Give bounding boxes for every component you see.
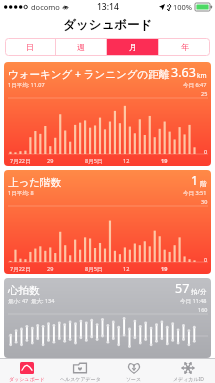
staticText: docomo bbox=[31, 2, 60, 12]
staticText: 12 bbox=[123, 265, 130, 272]
staticText: 19 bbox=[161, 157, 168, 164]
staticText: 月 bbox=[129, 42, 137, 52]
staticText: 最小: 47 最大: 134 bbox=[8, 297, 55, 305]
staticText: 8月5日 bbox=[85, 157, 103, 165]
staticText: 心拍数 bbox=[8, 284, 40, 297]
staticText: 3.63 bbox=[171, 64, 196, 81]
staticText: ソース bbox=[126, 376, 142, 382]
staticText: 1日平均: 11.07 bbox=[8, 81, 45, 89]
button[interactable]: メディカルID bbox=[161, 359, 215, 383]
staticText: 29 bbox=[47, 265, 54, 272]
button[interactable]: ウォーキング + ランニングの距離 bbox=[4, 62, 211, 166]
button[interactable]: ヘルスケアデータ bbox=[53, 359, 107, 383]
staticText: 0 bbox=[204, 148, 208, 155]
button[interactable]: 年 bbox=[159, 38, 210, 56]
staticText: 12 bbox=[123, 157, 130, 164]
staticText: 19 bbox=[161, 265, 168, 272]
staticText: 100% bbox=[173, 2, 193, 12]
staticText: 上った階数 bbox=[8, 176, 61, 189]
staticText: 今日 3:51 bbox=[183, 189, 207, 197]
staticText: 30 bbox=[201, 198, 208, 205]
staticText: 25 bbox=[201, 90, 208, 97]
staticText: 階 bbox=[200, 180, 207, 188]
button[interactable]: ダッシュボード bbox=[0, 359, 53, 383]
staticText: 13:14 bbox=[97, 1, 119, 13]
staticText: 今日 6:47 bbox=[183, 81, 207, 89]
staticText: 7月22日 bbox=[10, 265, 31, 273]
staticText: 拍/分 bbox=[191, 287, 207, 296]
staticText: ヘルスケアデータ bbox=[60, 376, 101, 382]
staticText: km bbox=[197, 71, 207, 80]
button[interactable]: 月 bbox=[107, 38, 158, 56]
staticText: 0 bbox=[204, 256, 208, 263]
staticText: 今日 11:48 bbox=[180, 297, 207, 305]
staticText: 57 bbox=[175, 280, 190, 297]
button[interactable]: 週 bbox=[56, 38, 106, 56]
staticText: ウォーキング + ランニングの距離 bbox=[8, 67, 170, 81]
staticText: ダッシュボード bbox=[9, 376, 45, 382]
staticText: 年 bbox=[181, 42, 189, 52]
staticText: 7月22日 bbox=[10, 157, 31, 165]
staticText: 8月5日 bbox=[85, 265, 103, 273]
button[interactable]: 上った階数 bbox=[4, 170, 211, 274]
staticText: 1 bbox=[191, 172, 199, 189]
button[interactable]: 日 bbox=[5, 38, 55, 56]
button[interactable]: ソース bbox=[107, 359, 161, 383]
staticText: 日 bbox=[26, 42, 34, 52]
staticText: メディカルID bbox=[173, 376, 204, 383]
staticText: ダッシュボード bbox=[63, 17, 153, 33]
staticText: 1日平均: 8 bbox=[8, 189, 34, 197]
staticText: 29 bbox=[47, 157, 54, 164]
staticText: 週 bbox=[77, 42, 85, 52]
button[interactable]: 心拍数 bbox=[4, 278, 211, 358]
staticText: 160 bbox=[198, 306, 208, 313]
